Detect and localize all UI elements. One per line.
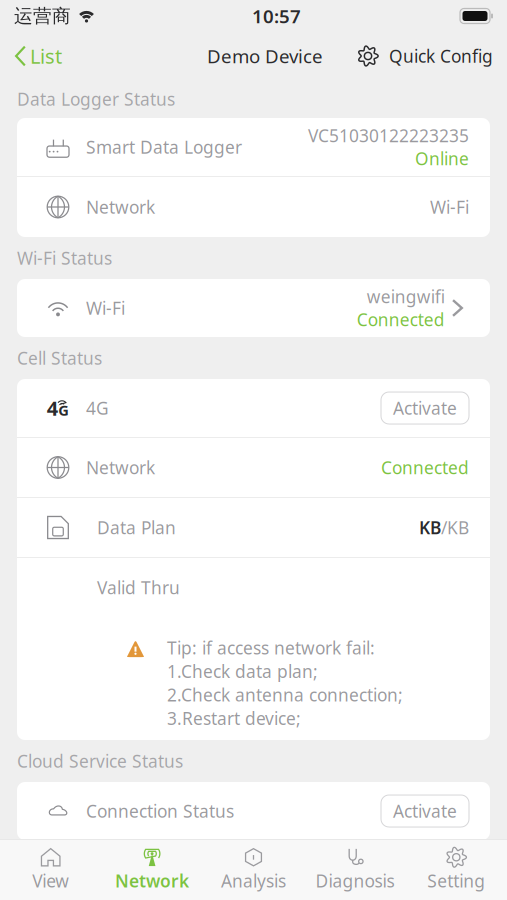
staticText: Network bbox=[86, 456, 155, 479]
staticText: Demo Device bbox=[207, 44, 323, 68]
staticText: KB bbox=[447, 516, 469, 539]
staticText: 3.Restart device; bbox=[167, 707, 301, 730]
staticText: 10:57 bbox=[252, 4, 301, 28]
staticText: Connected bbox=[357, 308, 445, 331]
staticText: 4 bbox=[47, 395, 58, 421]
button[interactable]: Activate bbox=[381, 392, 469, 424]
button[interactable]: Quick Config bbox=[347, 36, 507, 75]
staticText: Data Logger Status bbox=[17, 87, 175, 110]
button[interactable]: List bbox=[0, 35, 72, 77]
staticText: KB bbox=[419, 516, 441, 539]
staticText: List bbox=[30, 43, 62, 69]
staticText: 运营商 bbox=[14, 4, 71, 27]
staticText: Connection Status bbox=[86, 799, 234, 822]
staticText: Wi-Fi Status bbox=[17, 246, 112, 269]
staticText: Diagnosis bbox=[315, 869, 394, 892]
staticText: weingwifi bbox=[367, 285, 445, 308]
staticText: 1.Check data plan; bbox=[167, 660, 318, 683]
staticText: Quick Config bbox=[389, 44, 493, 67]
staticText: Activate bbox=[393, 396, 457, 419]
button[interactable]: Activate bbox=[381, 795, 469, 827]
staticText: / bbox=[441, 516, 447, 539]
staticText: Setting bbox=[427, 869, 485, 892]
staticText: Analysis bbox=[221, 869, 286, 892]
staticText: Smart Data Logger bbox=[86, 135, 242, 158]
staticText: Connected bbox=[381, 456, 469, 479]
button[interactable]: Setting bbox=[406, 839, 507, 900]
staticText: Tip: if access network fail: bbox=[167, 636, 375, 659]
staticText: VC51030122223235 bbox=[308, 124, 469, 147]
staticText: Network bbox=[86, 195, 155, 218]
staticText: Wi-Fi bbox=[430, 195, 469, 218]
button[interactable]: View bbox=[0, 839, 101, 900]
staticText: Network bbox=[115, 869, 189, 892]
staticText: Data Plan bbox=[97, 516, 176, 539]
staticText: Online bbox=[415, 147, 469, 170]
staticText: 2.Check antenna connection; bbox=[167, 683, 403, 706]
staticText: Cell Status bbox=[17, 346, 102, 369]
staticText: Valid Thru bbox=[97, 576, 180, 599]
button[interactable]: Network bbox=[101, 839, 203, 900]
staticText: G bbox=[58, 400, 69, 420]
button[interactable]: Diagnosis bbox=[304, 839, 406, 900]
staticText: Cloud Service Status bbox=[17, 749, 183, 772]
staticText: Activate bbox=[393, 799, 457, 822]
staticText: View bbox=[32, 869, 69, 892]
staticText: 4G bbox=[86, 396, 109, 419]
button[interactable]: Analysis bbox=[203, 839, 304, 900]
staticText: Wi-Fi bbox=[86, 296, 125, 319]
